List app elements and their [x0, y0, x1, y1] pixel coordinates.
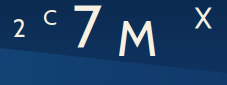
staticText: M	[116, 7, 157, 69]
staticText: C	[43, 3, 57, 31]
staticText: X	[194, 0, 211, 36]
staticText: 2	[12, 13, 25, 43]
staticText: 7	[72, 0, 102, 62]
